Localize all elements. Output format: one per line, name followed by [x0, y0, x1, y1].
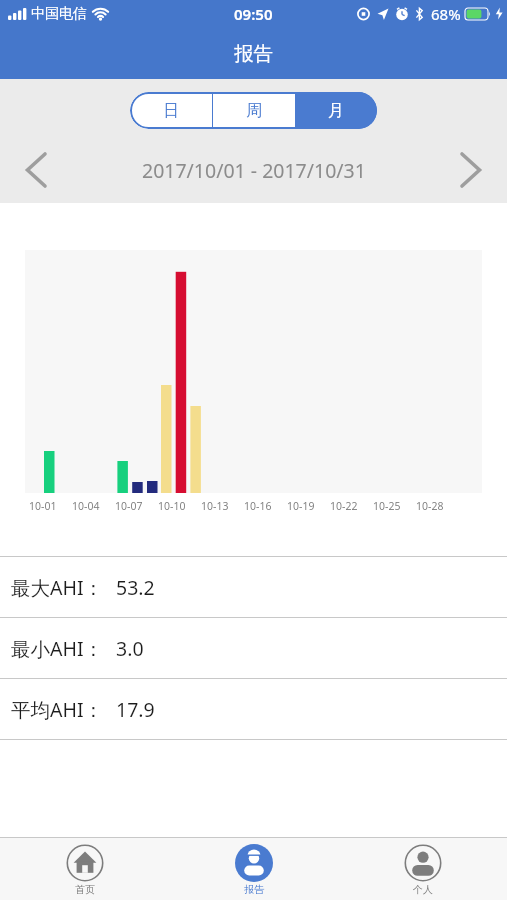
staticText: 10-22 — [330, 499, 358, 513]
staticText: 报告 — [244, 883, 264, 896]
staticText: 10-04 — [72, 499, 100, 513]
staticText: 首页 — [75, 883, 95, 896]
staticText: 个人 — [413, 883, 433, 896]
staticText: 10-28 — [416, 499, 444, 513]
button[interactable]: 首页 — [0, 838, 169, 900]
button[interactable] — [24, 152, 48, 188]
button[interactable]: 最大AHI： — [0, 557, 507, 617]
staticText: 平均AHI： — [11, 696, 104, 723]
staticText: 月 — [328, 101, 344, 121]
staticText: 中国电信 — [31, 5, 87, 23]
staticText: 3.0 — [116, 635, 144, 662]
staticText: 68% — [431, 4, 461, 24]
button[interactable]: 平均AHI： — [0, 679, 507, 739]
button[interactable]: 周 — [213, 92, 295, 129]
button[interactable]: 个人 — [338, 838, 507, 900]
button[interactable] — [459, 152, 483, 188]
button[interactable]: 日 — [130, 92, 212, 129]
staticText: 10-10 — [158, 499, 186, 513]
staticText: 10-01 — [29, 499, 57, 513]
staticText: 10-25 — [373, 499, 401, 513]
button[interactable]: 月 — [295, 92, 377, 129]
staticText: 10-16 — [244, 499, 272, 513]
staticText: 17.9 — [116, 696, 155, 723]
staticText: 最大AHI： — [11, 574, 104, 601]
staticText: 10-19 — [287, 499, 315, 513]
staticText: 2017/10/01 - 2017/10/31 — [142, 157, 366, 184]
button[interactable]: 最小AHI： — [0, 618, 507, 678]
staticText: 周 — [246, 101, 262, 121]
staticText: 53.2 — [116, 574, 155, 601]
staticText: 最小AHI： — [11, 635, 104, 662]
staticText: 09:50 — [234, 4, 273, 24]
staticText: 日 — [163, 101, 179, 121]
button[interactable]: 报告 — [169, 838, 338, 900]
staticText: 10-13 — [201, 499, 229, 513]
staticText: 报告 — [234, 41, 273, 66]
staticText: 10-07 — [115, 499, 143, 513]
